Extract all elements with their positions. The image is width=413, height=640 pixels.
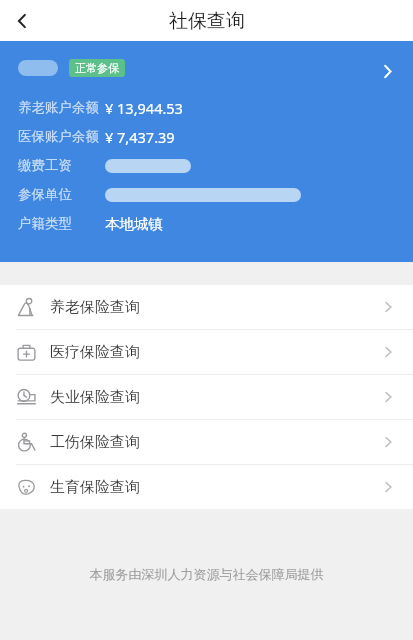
staticText: 户籍类型 bbox=[18, 215, 72, 232]
button[interactable]: 医疗保险查询 bbox=[0, 330, 413, 374]
staticText: 社保查询 bbox=[169, 9, 245, 33]
staticText: ¥ 13,944.53 bbox=[105, 98, 183, 117]
staticText: 本服务由深圳人力资源与社会保障局提供 bbox=[0, 566, 413, 582]
staticText: 养老保险查询 bbox=[50, 298, 140, 317]
staticText: 医疗保险查询 bbox=[50, 343, 140, 362]
staticText: ¥ 7,437.39 bbox=[105, 127, 175, 146]
button[interactable]: Details bbox=[367, 51, 407, 91]
button[interactable]: 正常参保 bbox=[0, 41, 413, 262]
staticText: 正常参保 bbox=[75, 61, 119, 75]
button[interactable]: 工伤保险查询 bbox=[0, 420, 413, 464]
staticText: 医保账户余额 bbox=[18, 128, 99, 145]
button[interactable]: Back bbox=[0, 0, 44, 41]
staticText: 生育保险查询 bbox=[50, 478, 140, 497]
staticText: 失业保险查询 bbox=[50, 388, 140, 407]
staticText: 本地城镇 bbox=[105, 215, 163, 233]
staticText: 参保单位 bbox=[18, 186, 72, 203]
staticText: 养老账户余额 bbox=[18, 99, 99, 116]
staticText: 工伤保险查询 bbox=[50, 433, 140, 452]
button[interactable]: 生育保险查询 bbox=[0, 465, 413, 509]
staticText: 缴费工资 bbox=[18, 157, 72, 174]
button[interactable]: 失业保险查询 bbox=[0, 375, 413, 419]
button[interactable]: 养老保险查询 bbox=[0, 285, 413, 329]
